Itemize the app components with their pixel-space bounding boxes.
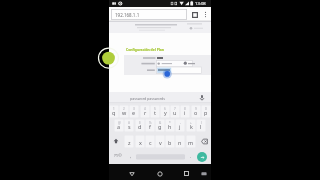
- staticText: i: [184, 109, 186, 116]
- staticText: o: [194, 109, 198, 116]
- staticText: u: [173, 109, 177, 116]
- staticText: k: [190, 123, 193, 130]
- staticText: d: [138, 123, 142, 130]
- button[interactable]: b: [165, 135, 175, 148]
- button[interactable]: Tabs: [189, 9, 200, 20]
- staticText: p: [204, 109, 208, 116]
- button[interactable]: ?1©: [110, 149, 125, 163]
- button[interactable]: (: [196, 119, 206, 132]
- button[interactable]: Space: [136, 152, 185, 162]
- button[interactable]: 3: [129, 105, 139, 118]
- staticText: 4: [144, 107, 146, 111]
- button[interactable]: 8: [180, 105, 190, 118]
- button[interactable]: Backspace: [197, 135, 211, 147]
- staticText: l: [200, 123, 202, 130]
- staticText: #: [128, 121, 130, 125]
- staticText: 1: [113, 107, 115, 111]
- button[interactable]: @: [114, 119, 124, 132]
- staticText: 7: [174, 107, 176, 111]
- staticText: 2: [123, 107, 125, 111]
- staticText: n: [178, 139, 182, 146]
- button[interactable]: Shift: [109, 135, 122, 147]
- staticText: &: [159, 121, 162, 125]
- staticText: 5: [154, 107, 156, 111]
- button[interactable]: n: [175, 135, 185, 148]
- staticText: y: [164, 109, 167, 116]
- button[interactable]: Back: [125, 167, 138, 180]
- button[interactable]: c: [145, 135, 155, 148]
- button[interactable]: -: [175, 119, 185, 132]
- button[interactable]: 0: [201, 105, 211, 118]
- staticText: *: [169, 121, 171, 125]
- button[interactable]: m: [186, 135, 196, 148]
- staticText: j: [179, 123, 181, 130]
- button[interactable]: Period: [187, 149, 195, 163]
- button[interactable]: z: [124, 135, 134, 148]
- staticText: 3: [133, 107, 135, 111]
- button[interactable]: passwords: [147, 96, 166, 101]
- staticText: m: [188, 139, 194, 146]
- staticText: g: [158, 123, 162, 130]
- button[interactable]: Recents: [180, 167, 193, 180]
- button[interactable]: v: [155, 135, 165, 148]
- button[interactable]: #: [124, 119, 134, 132]
- staticText: 9: [195, 107, 197, 111]
- staticText: 13:08: [195, 1, 206, 7]
- staticText: x: [139, 139, 142, 146]
- staticText: s: [128, 123, 131, 130]
- staticText: h: [168, 123, 172, 130]
- button[interactable]: Comma: [127, 149, 135, 163]
- staticText: Configuración del Plan: [126, 47, 165, 52]
- button[interactable]: Enter: [197, 152, 207, 162]
- staticText: $: [139, 121, 141, 125]
- button[interactable]: 5: [150, 105, 160, 118]
- button[interactable]: 9: [191, 105, 201, 118]
- staticText: a: [117, 123, 121, 130]
- staticText: 8: [184, 107, 186, 111]
- staticText: 192.168.1.1: [115, 12, 140, 18]
- button[interactable]: 4: [140, 105, 150, 118]
- button[interactable]: $: [135, 119, 145, 132]
- button[interactable]: 192.168.1.1: [111, 9, 187, 20]
- staticText: t: [154, 109, 156, 116]
- staticText: (: [201, 121, 202, 125]
- button[interactable]: 7: [170, 105, 180, 118]
- staticText: ?1©: [114, 153, 122, 159]
- button[interactable]: 6: [160, 105, 170, 118]
- button[interactable]: %: [145, 119, 155, 132]
- staticText: f: [149, 123, 151, 130]
- button[interactable]: password: [130, 96, 147, 101]
- button[interactable]: &: [155, 119, 165, 132]
- staticText: -: [180, 121, 181, 125]
- staticText: v: [159, 139, 162, 146]
- button[interactable]: Voice input: [196, 92, 207, 103]
- button[interactable]: Hide keyboard: [197, 167, 210, 180]
- staticText: e: [132, 109, 136, 116]
- staticText: r: [144, 109, 147, 116]
- staticText: %: [149, 121, 152, 125]
- staticText: ,: [130, 153, 132, 159]
- staticText: q: [112, 109, 116, 116]
- staticText: z: [128, 139, 131, 146]
- button[interactable]: 2: [119, 105, 129, 118]
- staticText: .: [190, 153, 192, 159]
- button[interactable]: *: [165, 119, 175, 132]
- staticText: 6: [164, 107, 166, 111]
- staticText: c: [149, 139, 152, 146]
- staticText: 0: [205, 107, 207, 111]
- button[interactable]: +: [186, 119, 196, 132]
- button[interactable]: More options: [200, 9, 211, 20]
- button[interactable]: Home: [153, 167, 166, 180]
- button[interactable]: 1: [109, 105, 119, 118]
- staticText: b: [168, 139, 172, 146]
- staticText: +: [190, 121, 192, 125]
- staticText: w: [122, 109, 127, 116]
- staticText: @: [118, 121, 121, 125]
- button[interactable]: x: [135, 135, 145, 148]
